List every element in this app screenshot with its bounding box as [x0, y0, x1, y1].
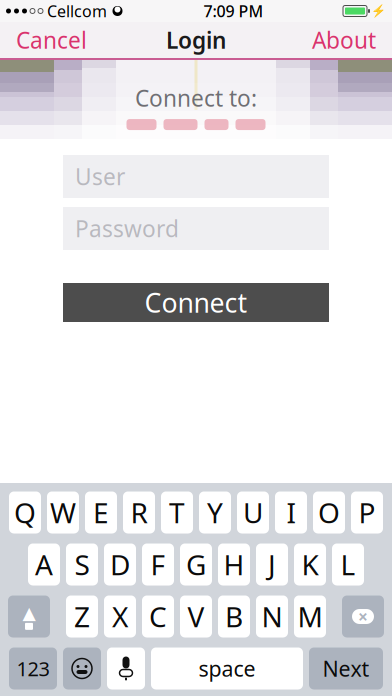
staticText: W — [50, 494, 76, 531]
button[interactable]: C — [142, 595, 174, 637]
staticText: F — [150, 546, 165, 583]
button[interactable]: J — [256, 543, 288, 585]
button[interactable]: I — [275, 491, 307, 533]
staticText: ⚡ — [371, 4, 386, 18]
staticText: A — [35, 546, 53, 583]
staticText: B — [225, 598, 243, 635]
staticText: K — [301, 546, 318, 583]
staticText: P — [358, 494, 375, 531]
staticText: 123 — [16, 655, 49, 682]
staticText: J — [268, 546, 276, 583]
staticText: Y — [207, 494, 223, 531]
staticText: H — [223, 546, 244, 583]
button[interactable]: Y — [199, 491, 231, 533]
button[interactable]: Shift — [8, 595, 50, 637]
button[interactable]: E — [85, 491, 117, 533]
button[interactable]: K — [294, 543, 326, 585]
staticText: Connect — [144, 285, 247, 320]
staticText: Cellcom — [47, 0, 107, 22]
button[interactable]: N — [256, 595, 288, 637]
staticText: V — [187, 598, 204, 635]
button[interactable]: 123 — [9, 647, 57, 689]
button[interactable]: T — [161, 491, 193, 533]
button[interactable]: V — [180, 595, 212, 637]
staticText: C — [149, 598, 167, 635]
staticText: D — [110, 546, 130, 583]
staticText: Q — [14, 494, 36, 531]
button[interactable]: R — [123, 491, 155, 533]
staticText: I — [286, 494, 295, 531]
staticText: User — [75, 161, 125, 191]
button[interactable]: About — [300, 22, 388, 58]
button[interactable]: H — [218, 543, 250, 585]
button[interactable]: M — [294, 595, 326, 637]
button[interactable]: S — [66, 543, 98, 585]
button[interactable]: Cancel — [4, 22, 99, 58]
staticText: Cancel — [16, 25, 87, 55]
button[interactable]: Connect — [63, 283, 329, 322]
button[interactable]: X — [104, 595, 136, 637]
staticText: S — [74, 546, 89, 583]
button[interactable]: Emoji — [63, 647, 101, 689]
button[interactable]: F — [142, 543, 174, 585]
button[interactable]: O — [313, 491, 345, 533]
button[interactable]: G — [180, 543, 212, 585]
button[interactable]: Delete — [342, 595, 384, 637]
button[interactable]: A — [28, 543, 60, 585]
button[interactable]: L — [332, 543, 364, 585]
staticText: ▲ — [22, 603, 35, 623]
staticText: R — [130, 494, 147, 531]
button[interactable]: W — [47, 491, 79, 533]
staticText: X — [112, 598, 128, 635]
staticText: U — [243, 494, 263, 531]
button[interactable]: Next — [309, 647, 383, 689]
staticText: Z — [74, 598, 90, 635]
button[interactable]: Dictate — [107, 647, 145, 689]
staticText: × — [358, 605, 368, 628]
staticText: About — [312, 25, 376, 55]
button[interactable]: Z — [66, 595, 98, 637]
staticText: Login — [166, 25, 226, 55]
button[interactable]: P — [351, 491, 383, 533]
button[interactable]: D — [104, 543, 136, 585]
staticText: space — [198, 654, 255, 683]
staticText: Connect to: — [135, 83, 257, 113]
staticText: T — [169, 494, 185, 531]
staticText: 7:09 PM — [203, 0, 263, 22]
staticText: E — [93, 494, 109, 531]
staticText: M — [297, 598, 322, 635]
staticText: Next — [322, 654, 369, 683]
button[interactable]: U — [237, 491, 269, 533]
staticText: Password — [75, 213, 179, 243]
button[interactable]: space — [151, 647, 303, 689]
staticText: L — [340, 546, 355, 583]
staticText: N — [261, 598, 282, 635]
button[interactable]: Q — [9, 491, 41, 533]
staticText: O — [318, 494, 340, 531]
button[interactable]: B — [218, 595, 250, 637]
staticText: G — [186, 546, 206, 583]
